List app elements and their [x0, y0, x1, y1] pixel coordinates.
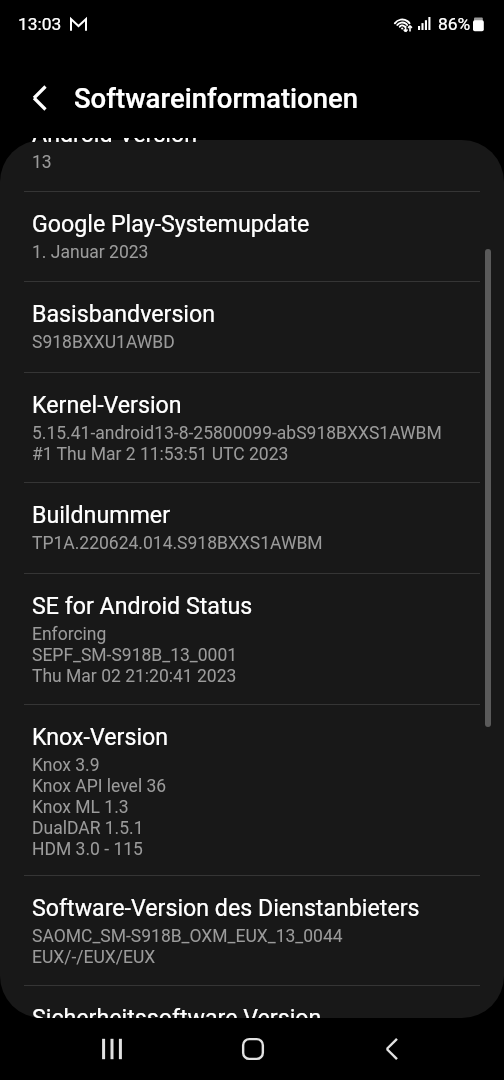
staticText: Knox ML 1.3	[32, 797, 129, 818]
button[interactable]: Back	[13, 70, 69, 126]
staticText: 5.15.41-android13-8-25800099-abS918BXXS1…	[32, 423, 442, 444]
staticText: Kernel-Version	[32, 391, 182, 418]
staticText: 13:03	[18, 14, 62, 34]
staticText: SE for Android Status	[32, 592, 253, 619]
staticText: TP1A.220624.014.S918BXXS1AWBM	[32, 533, 323, 554]
staticText: Enforcing	[32, 624, 107, 645]
staticText: Knox 3.9	[32, 755, 100, 776]
button[interactable]: Android-Version	[0, 138, 504, 191]
button[interactable]: Buildnummer	[0, 482, 504, 572]
staticText: SEPF_SM-S918B_13_0001	[32, 645, 238, 666]
staticText: Google Play-Systemupdate	[32, 210, 310, 237]
staticText: Software-Version des Dienstanbieters	[32, 894, 420, 921]
staticText: Buildnummer	[32, 501, 170, 528]
staticText: Knox-Version	[32, 723, 169, 750]
staticText: #1 Thu Mar 2 11:53:51 UTC 2023	[32, 444, 289, 465]
staticText: DualDAR 1.5.1	[32, 818, 144, 839]
staticText: Softwareinformationen	[74, 82, 359, 114]
staticText: SAOMC_SM-S918B_OXM_EUX_13_0044	[32, 926, 343, 947]
staticText: HDM 3.0 - 115	[32, 839, 143, 860]
staticText: 86%	[438, 14, 471, 34]
button[interactable]: Google Play-Systemupdate	[0, 191, 504, 281]
button[interactable]: Sicherheitssoftware Version	[0, 985, 504, 1018]
button[interactable]: Basisbandversion	[0, 281, 504, 371]
button[interactable]: Recent apps	[84, 1021, 140, 1077]
button[interactable]: Knox-Version	[0, 704, 504, 875]
button[interactable]: Kernel-Version	[0, 372, 504, 483]
staticText: 1. Januar 2023	[32, 242, 149, 263]
button[interactable]: Home	[225, 1021, 281, 1077]
button[interactable]: SE for Android Status	[0, 573, 504, 704]
staticText: Android-Version	[32, 138, 198, 147]
staticText: Sicherheitssoftware Version	[32, 1004, 322, 1018]
staticText: Basisbandversion	[32, 300, 216, 327]
staticText: S918BXXU1AWBD	[32, 332, 175, 353]
staticText: Knox API level 36	[32, 776, 167, 797]
staticText: EUX/-/EUX/EUX	[32, 947, 156, 968]
staticText: 13	[32, 152, 52, 173]
button[interactable]: Software-Version des Dienstanbieters	[0, 875, 504, 986]
button[interactable]: Back	[366, 1021, 422, 1077]
staticText: Thu Mar 02 21:20:41 2023	[32, 666, 237, 687]
